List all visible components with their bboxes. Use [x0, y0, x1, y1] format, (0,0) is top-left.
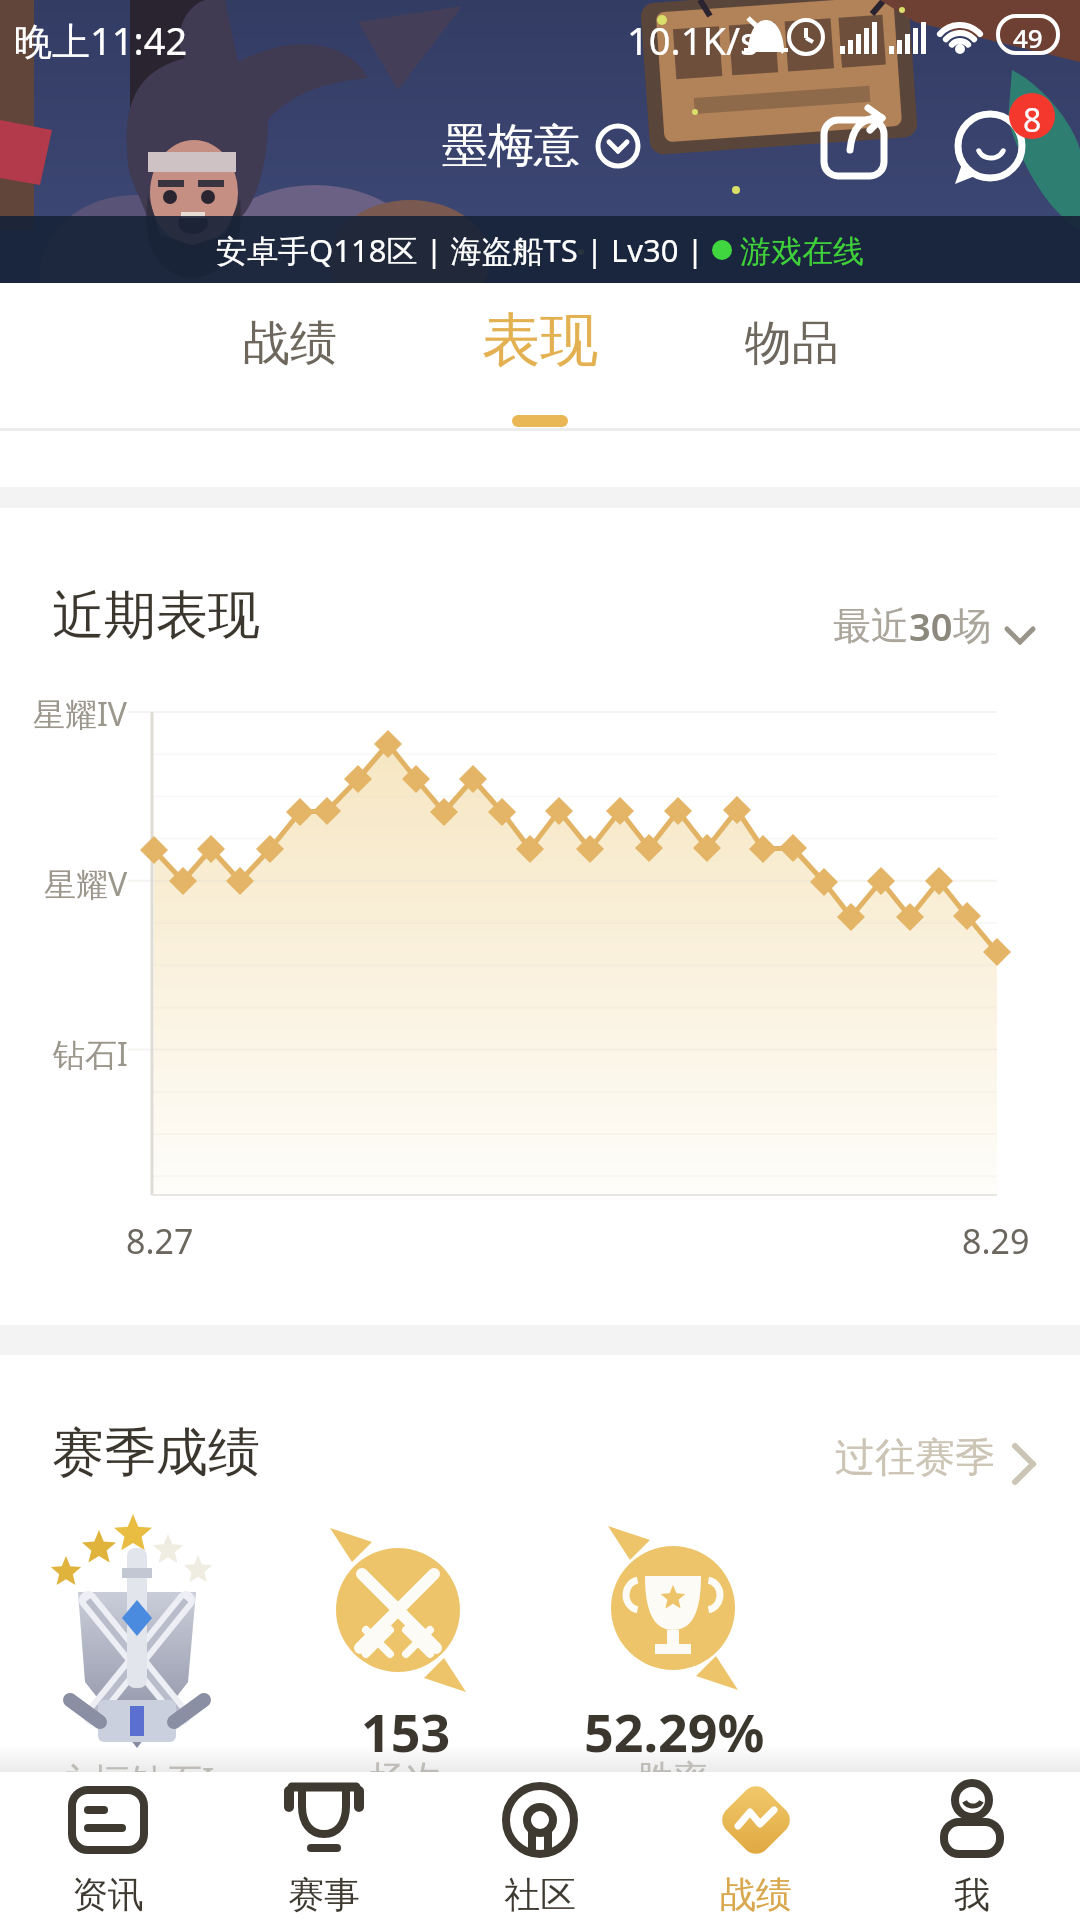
staticText: 星耀V — [44, 862, 128, 906]
staticText: 安卓手Q118区 | 海盗船TS | Lv30 | — [216, 229, 712, 271]
button[interactable]: 过往赛季 — [835, 1432, 1039, 1482]
staticText: 49 — [1013, 20, 1043, 55]
button[interactable]: 战绩 — [215, 303, 365, 383]
staticText: 153 — [361, 1696, 451, 1767]
staticText: 晚上11:42 — [14, 14, 188, 66]
staticText: 赛季成绩 — [52, 1420, 260, 1486]
staticText: 赛事 — [288, 1872, 360, 1917]
button[interactable]: 表现 — [465, 295, 615, 385]
staticText: 胜率 — [637, 1756, 709, 1801]
staticText: 永恒钻石I — [58, 1756, 215, 1805]
button[interactable]: 战绩 — [676, 1778, 836, 1918]
button[interactable]: 资讯 — [28, 1778, 188, 1918]
button[interactable]: 安卓手Q118区 | 海盗船TS | Lv30 | — [0, 216, 1080, 283]
staticText: 场 — [953, 602, 991, 650]
staticText: 战绩 — [720, 1872, 792, 1917]
button[interactable] — [430, 103, 650, 183]
staticText: 52.29% — [584, 1696, 765, 1767]
button[interactable]: 我 — [892, 1778, 1052, 1918]
staticText: 物品 — [745, 314, 839, 373]
button[interactable]: 赛事 — [244, 1778, 404, 1918]
button[interactable]: 社区 — [460, 1778, 620, 1918]
staticText: 社区 — [504, 1872, 576, 1917]
button[interactable]: 物品 — [717, 303, 867, 383]
staticText: 最近 — [833, 602, 909, 650]
staticText: 近期表现 — [52, 583, 260, 649]
button[interactable]: 最近 — [833, 600, 1037, 652]
button[interactable] — [806, 98, 902, 190]
staticText: 场次 — [370, 1756, 442, 1801]
staticText: 游戏在线 — [732, 229, 865, 271]
staticText: 30 — [909, 600, 953, 652]
staticText: 表现 — [482, 304, 598, 377]
staticText: 10.1K/s — [627, 14, 759, 66]
staticText: 我 — [954, 1872, 990, 1917]
staticText: 钻石I — [53, 1032, 128, 1076]
staticText: 墨梅意 — [442, 117, 580, 175]
staticText: 战绩 — [243, 314, 337, 373]
staticText: 8.27 — [126, 1218, 194, 1264]
staticText: 8 — [1023, 98, 1042, 142]
button[interactable] — [938, 85, 1060, 193]
staticText: 资讯 — [72, 1872, 144, 1917]
staticText: 过往赛季 — [835, 1432, 995, 1482]
staticText: 8.29 — [962, 1218, 1030, 1264]
staticText: 星耀IV — [33, 692, 128, 736]
